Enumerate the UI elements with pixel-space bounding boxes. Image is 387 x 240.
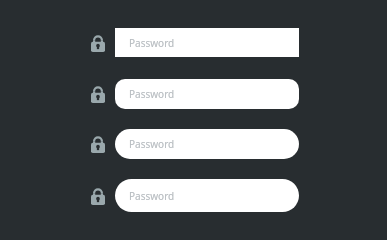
button[interactable]: Password lock bbox=[88, 84, 108, 104]
button[interactable]: Password lock bbox=[88, 134, 108, 154]
staticText: Password bbox=[129, 137, 175, 151]
staticText: Password bbox=[129, 36, 175, 50]
button[interactable]: Password bbox=[115, 79, 299, 109]
staticText: Password bbox=[129, 87, 175, 101]
button[interactable]: Password bbox=[115, 129, 299, 159]
button[interactable]: Password bbox=[115, 28, 299, 57]
button[interactable]: Password bbox=[115, 179, 299, 212]
staticText: Password bbox=[129, 189, 175, 203]
button[interactable]: Password lock bbox=[88, 33, 108, 53]
button[interactable]: Password lock bbox=[88, 186, 108, 206]
